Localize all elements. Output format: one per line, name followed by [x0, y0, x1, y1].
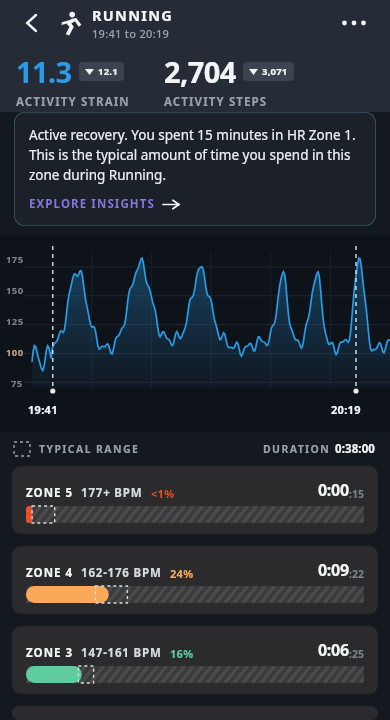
staticText: 0:38:00 — [335, 441, 376, 457]
staticText: ACTIVITY STEPS — [164, 94, 268, 110]
staticText: 75 — [11, 377, 23, 390]
button[interactable]: More options — [334, 3, 374, 43]
staticText: Active recovery. You spent 15 minutes in… — [29, 126, 361, 184]
staticText: 147-161 BPM — [81, 645, 162, 661]
staticText: 19:41 to 20:19 — [92, 26, 170, 41]
staticText: 177+ BPM — [81, 485, 143, 501]
staticText: ZONE 5 — [26, 485, 73, 501]
staticText: 2,704 — [164, 52, 236, 91]
staticText: 3,071 — [262, 65, 288, 78]
button[interactable]: Active recovery. You spent 15 minutes in… — [14, 112, 376, 226]
button[interactable]: ZONE 3 — [12, 626, 378, 694]
button[interactable]: ZONE 5 — [12, 466, 378, 534]
staticText: 150 — [6, 284, 24, 297]
staticText: 19:41 — [28, 402, 58, 417]
staticText: 12.1 — [98, 65, 118, 78]
staticText: DURATION — [263, 442, 335, 456]
staticText: 16% — [170, 646, 194, 661]
staticText: 125 — [6, 315, 24, 328]
staticText: EXPLORE INSIGHTS — [29, 196, 155, 212]
staticText: 24% — [170, 566, 194, 581]
staticText: 11.3 — [16, 52, 72, 91]
staticText: 0:06 — [318, 639, 349, 661]
staticText: RUNNING — [92, 5, 174, 25]
staticText: 175 — [6, 253, 24, 266]
staticText: :15 — [349, 487, 364, 501]
staticText: 100 — [6, 346, 24, 359]
staticText: 162-176 BPM — [81, 565, 162, 581]
staticText: 20:19 — [331, 402, 361, 417]
staticText: 0:09 — [318, 559, 349, 581]
staticText: :22 — [349, 567, 364, 581]
staticText: TYPICAL RANGE — [39, 442, 140, 456]
staticText: :25 — [349, 647, 364, 661]
staticText: 0:00 — [318, 479, 349, 501]
button[interactable]: ZONE 4 — [12, 546, 378, 614]
staticText: <1% — [151, 486, 175, 501]
staticText: ZONE 3 — [26, 645, 73, 661]
staticText: ZONE 4 — [26, 565, 73, 581]
staticText: ACTIVITY STRAIN — [16, 94, 130, 110]
button[interactable]: Back — [16, 7, 48, 39]
